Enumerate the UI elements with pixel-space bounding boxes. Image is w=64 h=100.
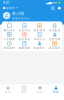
staticText: 在线问诊 xyxy=(18,29,30,32)
staticText: 9:41 xyxy=(3,1,10,4)
staticText: 预约挂号 xyxy=(3,29,15,32)
staticText: ▂▄▆ xyxy=(45,1,51,4)
button[interactable]: Messages xyxy=(58,6,61,10)
button[interactable]: 我的 xyxy=(48,85,64,95)
button[interactable]: 预约挂号 xyxy=(2,24,17,32)
button[interactable]: 李小明 xyxy=(0,11,64,20)
staticText: 首页 xyxy=(5,90,11,94)
staticText: 药品配送 xyxy=(49,29,61,32)
button[interactable]: 深圳市 xyxy=(3,6,18,10)
button[interactable]: 药品配送 xyxy=(47,24,62,32)
staticText: WiFi xyxy=(52,1,57,4)
staticText: 疫苗接种 xyxy=(3,46,15,50)
button[interactable]: 报告查询 xyxy=(32,24,47,32)
staticText: 急诊服务 xyxy=(18,37,30,41)
button[interactable]: 健康档案 xyxy=(17,41,32,50)
staticText: 门诊缴费 xyxy=(3,37,15,41)
staticText: 体检中心 xyxy=(33,37,45,41)
button[interactable]: 家庭医生 xyxy=(32,41,47,50)
button[interactable]: 疫苗接种 xyxy=(2,41,17,50)
button[interactable]: 更多服务 xyxy=(47,41,62,50)
staticText: 报告查询 xyxy=(33,29,45,32)
button[interactable]: 急诊服务 xyxy=(17,32,32,41)
button[interactable]: 门诊缴费 xyxy=(2,32,17,41)
staticText: 李小明 xyxy=(12,11,24,16)
staticText: 健康档案 xyxy=(18,46,30,50)
staticText: 消息 xyxy=(37,90,43,94)
button[interactable]: 首页 xyxy=(0,85,16,95)
staticText: 服务 xyxy=(21,90,27,94)
button[interactable]: 在线问诊 xyxy=(17,24,32,32)
button[interactable]: 名医专家 xyxy=(47,32,62,41)
button[interactable]: 体检中心 xyxy=(32,32,47,41)
staticText: 更多服务 xyxy=(49,46,61,50)
button[interactable]: 消息 xyxy=(32,85,48,95)
staticText: 深圳市 xyxy=(6,6,15,10)
staticText: 家庭医生 xyxy=(33,46,45,50)
button[interactable]: 服务 xyxy=(16,85,32,95)
staticText: 名医专家 xyxy=(49,37,61,41)
staticText: 我的 xyxy=(53,90,59,94)
button[interactable]: Search xyxy=(51,6,54,10)
staticText: 健康会员中心 xyxy=(12,17,30,20)
